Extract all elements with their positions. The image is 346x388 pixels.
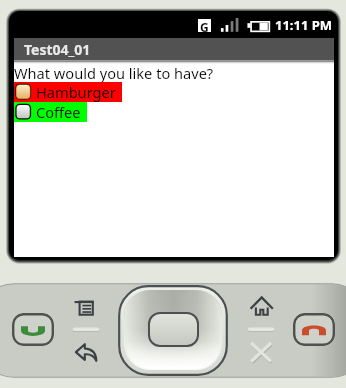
button[interactable]: Back	[74, 342, 99, 363]
button[interactable]: End call	[293, 313, 335, 346]
staticText: 11:11 PM	[275, 16, 333, 34]
staticText: Coffee	[36, 102, 81, 122]
button[interactable]: Menu	[74, 299, 95, 317]
staticText: Test04_01	[24, 40, 91, 59]
button[interactable]: Hamburger	[14, 82, 122, 102]
button[interactable]: Directional pad	[118, 285, 228, 376]
button[interactable]: Call	[12, 313, 54, 346]
staticText: What would you like to have?	[14, 63, 214, 83]
button[interactable]: Coffee	[14, 102, 87, 122]
button[interactable]: Test04_01	[14, 38, 334, 60]
staticText: Hamburger	[36, 82, 116, 102]
button[interactable]: Close	[249, 341, 273, 364]
button[interactable]: Home	[249, 295, 274, 317]
staticText: G	[200, 19, 209, 32]
